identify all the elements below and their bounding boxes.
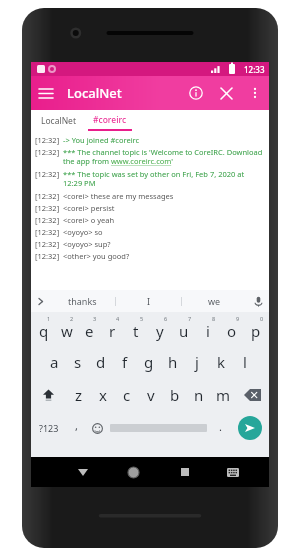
button[interactable]: j xyxy=(185,345,209,378)
staticText: b xyxy=(170,385,180,405)
staticText: *** The channel topic is 'Welcome to Cor… xyxy=(63,147,265,167)
button[interactable]: Close channel xyxy=(211,78,241,108)
button[interactable]: Send xyxy=(231,411,269,445)
button[interactable]: Open navigation menu xyxy=(31,78,61,108)
button[interactable]: [12:32] xyxy=(35,226,265,238)
button[interactable]: v xyxy=(139,378,163,411)
button[interactable]: Expand suggestions xyxy=(31,290,49,312)
button[interactable]: 5 xyxy=(124,312,148,345)
button[interactable]: l xyxy=(233,345,257,378)
button[interactable]: 8 xyxy=(196,312,220,345)
staticText: I xyxy=(147,295,151,307)
staticText: e xyxy=(85,321,94,341)
staticText: , xyxy=(75,418,78,433)
staticText: j xyxy=(195,352,199,372)
button[interactable]: [12:32] xyxy=(35,214,265,226)
button[interactable]: ?123 xyxy=(31,411,67,445)
button[interactable]: Channel info xyxy=(181,78,211,108)
button[interactable]: Backspace xyxy=(235,378,269,411)
button[interactable]: [12:32] xyxy=(35,134,265,146)
staticText: <other> you good? xyxy=(63,251,130,261)
button[interactable]: x xyxy=(91,378,115,411)
staticText: 9 xyxy=(236,315,240,322)
button[interactable]: f xyxy=(113,345,137,378)
staticText: 12:33 xyxy=(244,64,265,75)
staticText: [12:32] xyxy=(35,227,60,237)
button[interactable]: 2 xyxy=(55,312,78,345)
staticText: 8 xyxy=(212,315,216,322)
button[interactable]: a xyxy=(43,345,66,378)
staticText: 6 xyxy=(164,315,168,322)
staticText: w xyxy=(61,321,73,341)
button[interactable]: 6 xyxy=(148,312,172,345)
staticText: [12:32] xyxy=(35,203,60,213)
button[interactable]: 1 xyxy=(32,312,55,345)
staticText: *** The topic was set by other on Fri, F… xyxy=(63,169,265,189)
staticText: <oyoyo> sup? xyxy=(63,239,111,249)
button[interactable]: Send message xyxy=(235,426,269,456)
staticText: [12:32] xyxy=(35,215,60,225)
staticText: <corei> o yeah xyxy=(63,215,115,225)
button[interactable]: Emoji xyxy=(86,411,108,445)
button[interactable]: [12:32] xyxy=(35,250,265,262)
button[interactable] xyxy=(31,426,235,456)
button[interactable]: k xyxy=(209,345,233,378)
button[interactable]: 7 xyxy=(172,312,196,345)
button[interactable]: [12:32] xyxy=(35,146,265,168)
staticText: 7 xyxy=(188,315,192,322)
button[interactable]: Switch keyboard xyxy=(210,457,256,487)
staticText: p xyxy=(251,321,261,341)
staticText: 4 xyxy=(116,315,120,322)
staticText: ?123 xyxy=(39,422,59,434)
staticText: h xyxy=(168,352,178,372)
staticText: r xyxy=(109,321,116,341)
button[interactable]: n xyxy=(187,378,211,411)
button[interactable]: d xyxy=(89,345,113,378)
staticText: [12:32] xyxy=(35,169,60,179)
button[interactable]: LocalNet xyxy=(37,112,80,130)
button[interactable]: [12:32] xyxy=(35,202,265,214)
button[interactable]: c xyxy=(115,378,139,411)
staticText: c xyxy=(123,385,131,405)
staticText: z xyxy=(75,385,83,405)
button[interactable]: 3 xyxy=(78,312,101,345)
button[interactable]: Hide keyboard xyxy=(58,457,108,487)
button[interactable]: g xyxy=(137,345,161,378)
staticText: thanks xyxy=(68,295,97,307)
staticText: i xyxy=(206,321,210,341)
button[interactable]: Shift xyxy=(31,378,66,411)
staticText: LocalNet xyxy=(41,115,76,127)
button[interactable]: Voice input xyxy=(247,290,269,312)
staticText: 3 xyxy=(93,315,97,322)
button[interactable]: Period xyxy=(209,411,231,445)
button[interactable]: s xyxy=(66,345,89,378)
button[interactable]: [12:32] xyxy=(35,190,265,202)
button[interactable]: thanks xyxy=(49,290,115,312)
staticText: x xyxy=(99,385,107,405)
button[interactable]: z xyxy=(66,378,91,411)
staticText: 5 xyxy=(140,315,144,322)
staticText: t xyxy=(133,321,139,341)
staticText: we xyxy=(208,295,221,307)
button[interactable]: Home xyxy=(108,457,159,487)
staticText: <corei> persist xyxy=(63,203,115,213)
button[interactable]: 0 xyxy=(244,312,268,345)
staticText: u xyxy=(179,321,189,341)
button[interactable]: Recent apps xyxy=(159,457,210,487)
button[interactable]: m xyxy=(211,378,235,411)
button[interactable]: 4 xyxy=(101,312,124,345)
staticText: f xyxy=(122,352,128,372)
staticText: LocalNet xyxy=(67,84,122,102)
staticText: s xyxy=(74,352,82,372)
button[interactable]: #coreirc xyxy=(88,112,132,131)
button[interactable]: [12:32] xyxy=(35,168,265,190)
button[interactable]: 9 xyxy=(220,312,244,345)
button[interactable]: we xyxy=(182,290,247,312)
button[interactable]: Space xyxy=(108,411,209,445)
button[interactable]: More options xyxy=(241,79,269,107)
button[interactable]: b xyxy=(163,378,187,411)
button[interactable]: [12:32] xyxy=(35,238,265,250)
button[interactable]: I xyxy=(116,290,181,312)
button[interactable]: Comma xyxy=(67,411,86,445)
button[interactable]: h xyxy=(161,345,185,378)
